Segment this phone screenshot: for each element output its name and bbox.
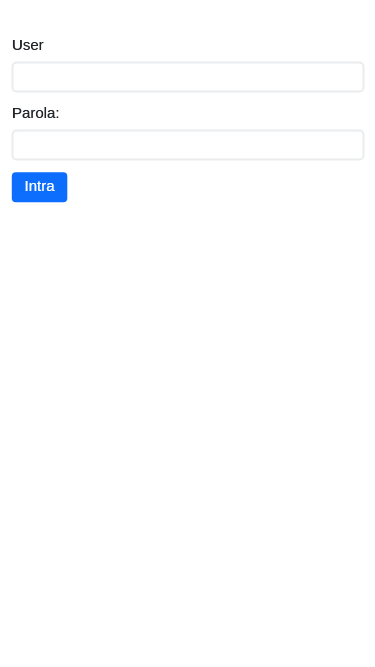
button[interactable]: Intra <box>12 172 68 203</box>
staticText: User <box>12 36 44 53</box>
staticText: Parola: <box>12 104 60 121</box>
staticText: User <box>12 36 44 53</box>
button[interactable]: Password input field <box>11 129 365 161</box>
button[interactable]: User input field <box>11 61 365 93</box>
staticText: Parola: <box>12 104 60 121</box>
staticText: Intra <box>24 177 55 194</box>
